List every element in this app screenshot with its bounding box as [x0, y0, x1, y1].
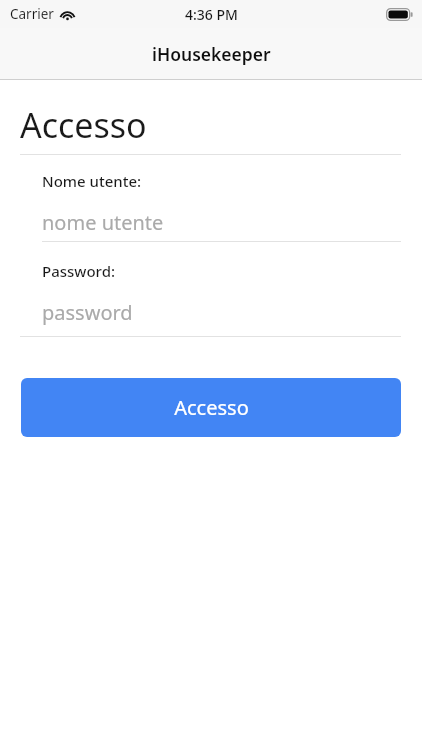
staticText: Accesso [20, 102, 147, 148]
staticText: password [42, 299, 133, 326]
staticText: Accesso [174, 394, 249, 421]
staticText: Nome utente: [42, 171, 142, 191]
staticText: Carrier [10, 5, 54, 23]
staticText: iHousekeeper [152, 42, 271, 66]
staticText: nome utente [42, 209, 164, 236]
other: Battery full [386, 8, 413, 21]
staticText: Password: [42, 261, 116, 281]
button[interactable]: password [42, 294, 401, 330]
other: Wi-Fi signal [60, 9, 75, 20]
staticText: 4:36 PM [185, 5, 238, 24]
button[interactable]: Accesso [21, 378, 401, 437]
button[interactable]: nome utente [42, 204, 401, 240]
